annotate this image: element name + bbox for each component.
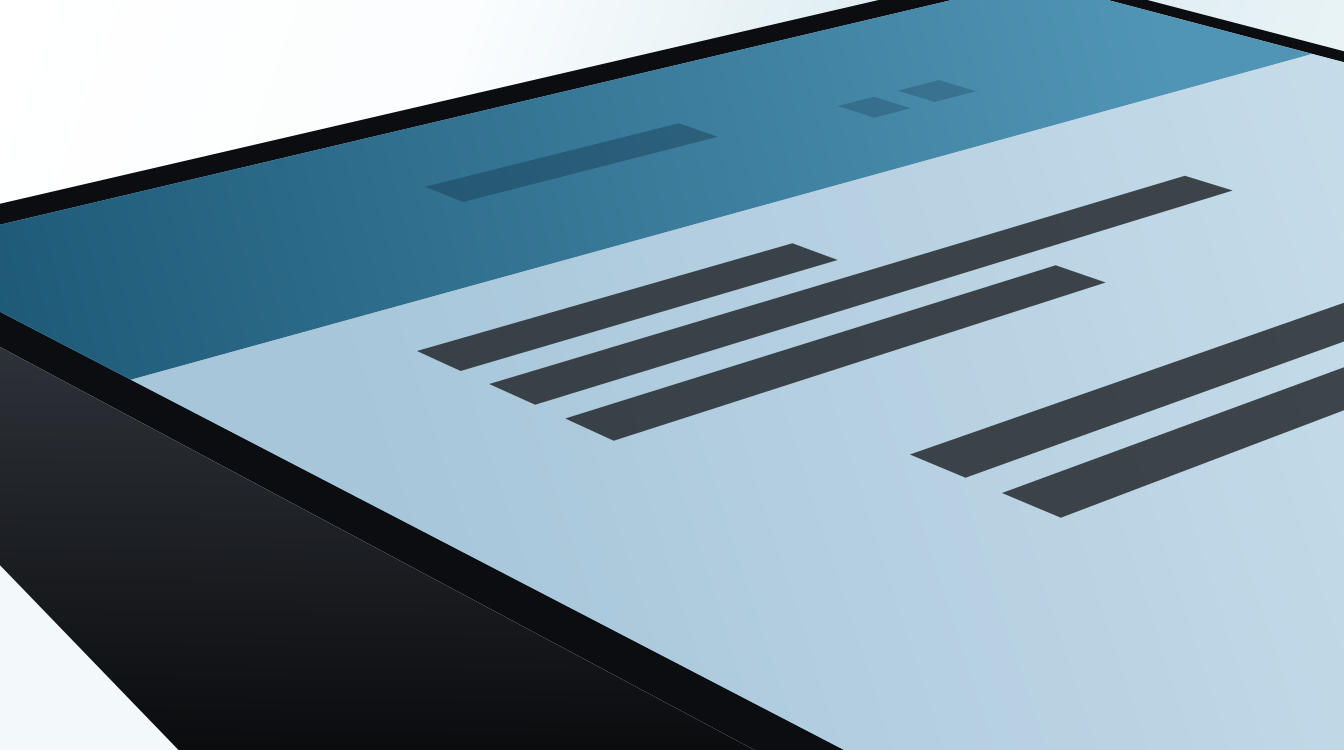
other: Share friends app screen on a phone bbox=[0, 0, 1344, 750]
